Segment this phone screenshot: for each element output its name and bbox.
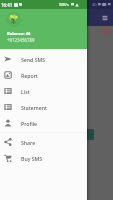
button[interactable]: Report: [0, 67, 87, 83]
staticText: Report: [21, 72, 38, 79]
button[interactable]: Statement: [0, 99, 87, 115]
staticText: Send SMS: [21, 56, 46, 63]
button[interactable]: Compose: [86, 129, 94, 140]
staticText: 16:41: [1, 2, 13, 8]
staticText: Balance: 46: [7, 31, 31, 37]
staticText: 4G: [92, 2, 97, 7]
button[interactable]: List: [0, 83, 87, 99]
staticText: 0KB/s: [59, 2, 69, 7]
staticText: +9123456789: [7, 37, 35, 43]
staticText: Share: [21, 139, 36, 146]
button[interactable]: Profile: [0, 115, 87, 131]
staticText: Profile: [21, 120, 38, 127]
button[interactable]: Send SMS: [0, 51, 87, 67]
staticText: List: [21, 88, 30, 95]
button[interactable]: Buy SMS: [0, 150, 87, 166]
staticText: Buy SMS: [21, 155, 43, 162]
staticText: Statement: [21, 104, 47, 111]
button[interactable]: Share: [0, 134, 87, 150]
